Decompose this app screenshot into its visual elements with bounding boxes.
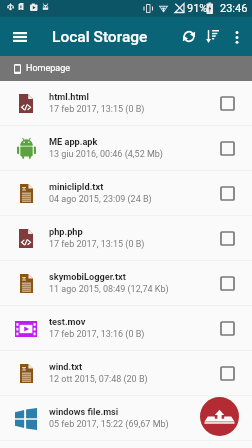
button[interactable]: More options (225, 17, 249, 56)
button[interactable]: Select file (221, 97, 234, 110)
staticText: test.mov (49, 316, 86, 327)
staticText: windows file.msi (49, 406, 119, 417)
button[interactable]: Select file (221, 412, 234, 425)
staticText: 12 ott 2015, 07:48 (20 B) (49, 374, 148, 385)
staticText: 04 ago 2015, 23:09 (24 B) (49, 194, 152, 205)
button[interactable]: windows file.msi (0, 396, 252, 441)
button[interactable]: skymobiLogger.txt (0, 261, 252, 306)
button[interactable]: Select file (221, 322, 234, 335)
button[interactable]: Select file (221, 367, 234, 380)
staticText: ME app.apk (49, 136, 98, 147)
staticText: 17 feb 2017, 13:15 (0 B) (49, 239, 145, 250)
button[interactable]: Upload (200, 397, 239, 436)
staticText: 05 feb 2017, 15:22 (69,67 Mb) (49, 419, 169, 430)
button[interactable]: php.php (0, 216, 252, 261)
button[interactable]: Select file (221, 232, 234, 245)
button[interactable]: ME app.apk (0, 126, 252, 171)
staticText: 17 feb 2017, 13:16 (0 B) (49, 329, 145, 340)
button[interactable]: Homepage (14, 56, 252, 81)
staticText: 11 ago 2015, 08:49 (12,74 Kb) (49, 284, 169, 295)
button[interactable]: Menu (0, 17, 40, 56)
staticText: 91% (187, 2, 208, 15)
button[interactable]: Select file (221, 187, 234, 200)
button[interactable]: test.mov (0, 306, 252, 351)
staticText: 13 giu 2016, 00:46 (4,52 Mb) (49, 149, 163, 160)
staticText: Local Storage (52, 28, 148, 46)
staticText: skymobiLogger.txt (49, 271, 126, 282)
button[interactable]: wind.txt (0, 351, 252, 396)
button[interactable]: Select file (221, 142, 234, 155)
button[interactable]: Refresh (176, 17, 201, 56)
staticText: 17 feb 2017, 13:15 (0 B) (49, 104, 145, 115)
button[interactable]: Sort (201, 17, 225, 56)
staticText: 23:46 (220, 2, 248, 15)
button[interactable]: miniclipId.txt (0, 171, 252, 216)
staticText: html.html (49, 91, 89, 102)
staticText: miniclipId.txt (49, 181, 104, 192)
button[interactable]: html.html (0, 81, 252, 126)
staticText: Homepage (26, 63, 70, 74)
staticText: php.php (49, 226, 83, 237)
staticText: wind.txt (49, 361, 83, 372)
button[interactable]: Select file (221, 277, 234, 290)
